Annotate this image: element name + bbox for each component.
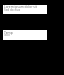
staticText: labo bbox=[4, 33, 11, 37]
staticText: Sed do eius bbox=[4, 8, 21, 12]
button[interactable]: Lorem ipsum dolor sit bbox=[3, 5, 47, 14]
staticText: Temp bbox=[4, 30, 13, 35]
button[interactable]: Temp bbox=[3, 30, 47, 40]
staticText: Lorem ipsum dolor sit bbox=[4, 5, 37, 9]
